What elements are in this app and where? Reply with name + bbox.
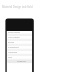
staticText: Material Design text field [2,5,38,9]
button[interactable]: Submit [7,60,32,63]
staticText: City [8,55,28,58]
staticText: Address [8,50,28,53]
staticText: Last name [8,35,28,38]
staticText: First name [8,30,28,33]
staticText: Password [8,45,28,48]
staticText: SUBMIT [17,59,29,62]
button[interactable]: City field [7,59,32,61]
staticText: Email [8,40,28,43]
